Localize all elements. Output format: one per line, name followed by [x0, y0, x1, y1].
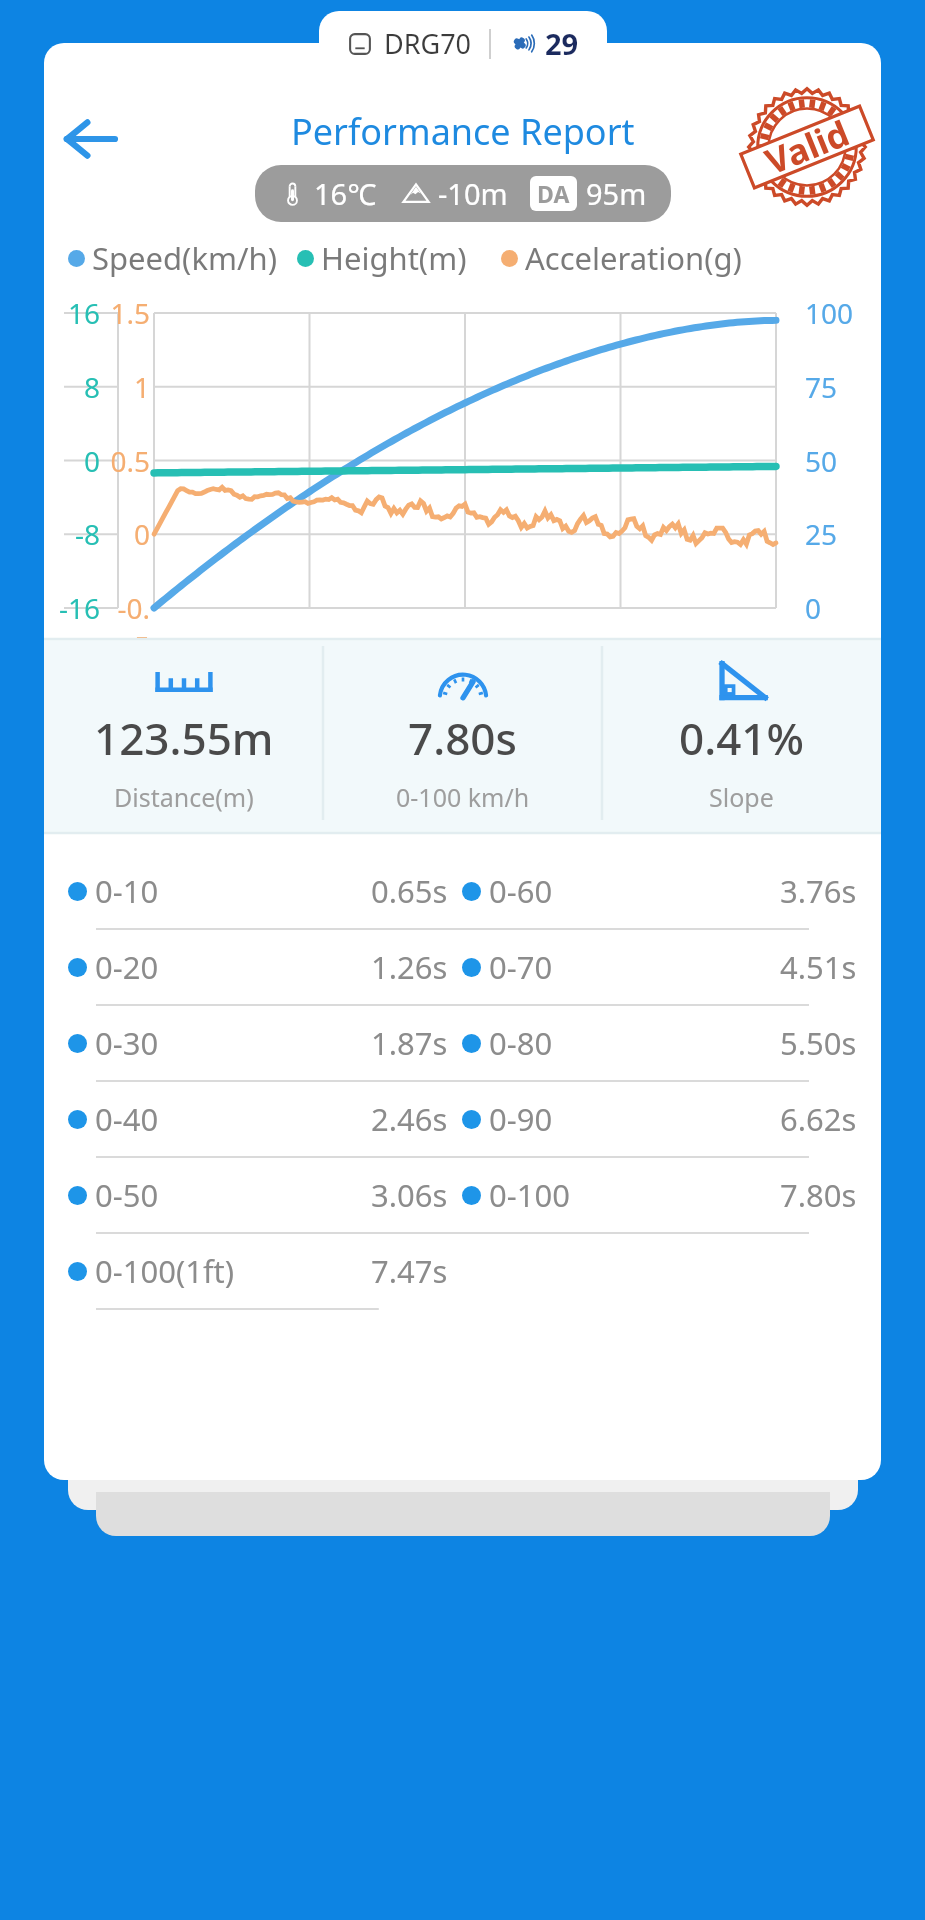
staticText: 0.41%	[679, 708, 804, 768]
staticText: Valid	[758, 108, 857, 186]
staticText: Slope	[709, 780, 774, 814]
staticText: 0-10	[95, 870, 159, 912]
staticText: -16	[58, 589, 100, 627]
staticText: 0	[83, 442, 100, 480]
staticText: Performance Report	[291, 107, 635, 156]
staticText: 2.46s	[371, 1098, 448, 1140]
staticText: 0	[133, 515, 150, 553]
staticText: 7.80s	[780, 1174, 857, 1216]
button[interactable]: 123.55m	[44, 638, 323, 834]
button[interactable]: 0-40	[44, 1082, 881, 1158]
button[interactable]: 0.41%	[602, 638, 881, 834]
staticText: DRG70	[384, 25, 472, 62]
staticText: 1.5	[110, 294, 150, 332]
staticText: 0-20	[95, 946, 159, 988]
staticText: 123.55m	[94, 708, 274, 768]
staticText: 0-90	[489, 1098, 553, 1140]
staticText: 1.26s	[371, 946, 448, 988]
staticText: 0-70	[489, 946, 553, 988]
staticText: Distance(m)	[114, 780, 254, 814]
staticText: 1	[133, 368, 150, 406]
button[interactable]: 0-30	[44, 1006, 881, 1082]
staticText: 0.5	[110, 442, 150, 480]
staticText: 0-30	[95, 1022, 159, 1064]
staticText: 5.50s	[780, 1022, 857, 1064]
button[interactable]: 0-50	[44, 1158, 881, 1234]
staticText: 29	[545, 24, 579, 63]
staticText: 0-50	[95, 1174, 159, 1216]
button[interactable]: 0-10	[44, 854, 881, 930]
staticText: 4.51s	[780, 946, 857, 988]
staticText: 95m	[586, 174, 647, 213]
staticText: 16℃	[314, 174, 377, 213]
staticText: Acceleration(g)	[525, 237, 742, 279]
staticText: 0-100	[489, 1174, 570, 1216]
staticText: 0-100 km/h	[396, 780, 530, 814]
staticText: 75	[805, 368, 838, 406]
staticText: -10m	[438, 174, 508, 213]
staticText: Height(m)	[321, 237, 467, 279]
staticText: 3.06s	[371, 1174, 448, 1216]
staticText: 100	[805, 294, 854, 332]
staticText: Speed(km/h)	[92, 237, 277, 279]
button[interactable]: Back	[52, 101, 128, 177]
button[interactable]: DRG70	[319, 11, 607, 76]
staticText: 8	[83, 368, 100, 406]
staticText: 0-100(1ft)	[95, 1250, 235, 1292]
staticText: -0.5	[104, 589, 150, 665]
button[interactable]: 0-100(1ft)	[44, 1234, 881, 1310]
staticText: 50	[805, 442, 838, 480]
staticText: 0-40	[95, 1098, 159, 1140]
staticText: 7.47s	[371, 1250, 448, 1292]
staticText: 0-60	[489, 870, 553, 912]
staticText: 7.80s	[408, 708, 517, 768]
button[interactable]: 0-20	[44, 930, 881, 1006]
button[interactable]: 7.80s	[323, 638, 602, 834]
staticText: 3.76s	[780, 870, 857, 912]
staticText: 1.87s	[371, 1022, 448, 1064]
staticText: 25	[805, 515, 838, 553]
staticText: 0.65s	[371, 870, 448, 912]
staticText: 0	[805, 589, 822, 627]
staticText: DA	[537, 178, 570, 209]
staticText: 16	[67, 294, 100, 332]
staticText: 6.62s	[780, 1098, 857, 1140]
staticText: -8	[74, 515, 100, 553]
staticText: 0-80	[489, 1022, 553, 1064]
